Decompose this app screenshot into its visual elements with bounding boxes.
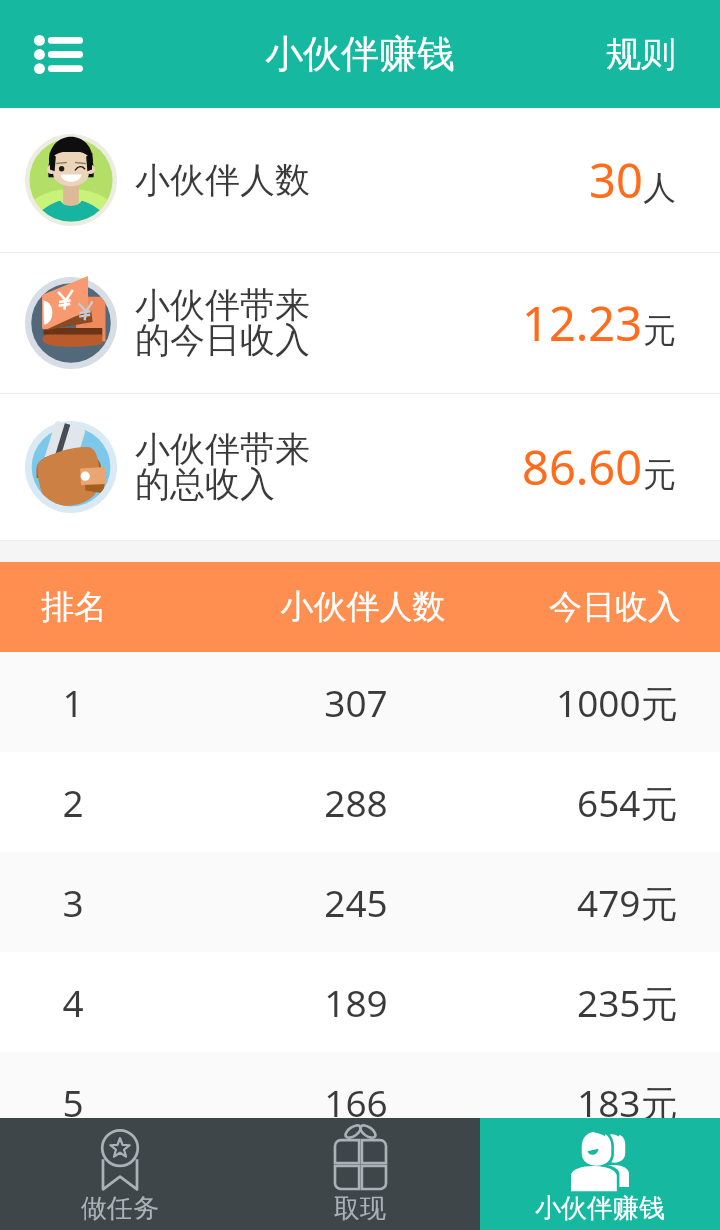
- button[interactable]: 2: [0, 752, 720, 852]
- staticText: 235元: [577, 977, 678, 1028]
- staticText: 小伙伴人数: [218, 586, 508, 628]
- staticText: 288: [211, 777, 501, 827]
- button[interactable]: 3: [0, 852, 720, 952]
- staticText: 今日收入: [549, 586, 681, 628]
- other: Partners earn money: [571, 1126, 629, 1190]
- staticText: 元: [643, 310, 676, 352]
- staticText: 1000元: [556, 677, 678, 728]
- button[interactable]: 小伙伴带来 的今日收入: [0, 253, 720, 393]
- button[interactable]: 4: [0, 952, 720, 1052]
- button[interactable]: Partners earn money: [480, 1118, 720, 1230]
- staticText: 小伙伴赚钱: [535, 1192, 665, 1225]
- button[interactable]: 规则: [582, 18, 720, 90]
- staticText: 做任务: [81, 1192, 159, 1225]
- button[interactable]: 5: [0, 1052, 720, 1152]
- staticText: 2: [0, 777, 146, 827]
- staticText: 4: [0, 977, 146, 1027]
- staticText: 30: [589, 148, 643, 212]
- staticText: 307: [211, 677, 501, 727]
- staticText: 小伙伴人数: [135, 158, 310, 202]
- staticText: 取现: [334, 1192, 386, 1225]
- staticText: 12.23: [522, 291, 643, 355]
- button[interactable]: Menu: [18, 18, 98, 90]
- staticText: 3: [0, 877, 146, 927]
- staticText: 166: [211, 1077, 501, 1127]
- button[interactable]: 1: [0, 652, 720, 752]
- staticText: 654元: [577, 777, 678, 828]
- staticText: 5: [0, 1077, 146, 1127]
- staticText: 1: [0, 677, 146, 727]
- other: Withdraw: [335, 1124, 386, 1190]
- button[interactable]: 小伙伴人数: [0, 108, 720, 252]
- other: Tasks: [100, 1126, 140, 1190]
- staticText: 86.60: [522, 435, 643, 499]
- staticText: 183元: [577, 1077, 678, 1128]
- staticText: 小伙伴带来 的今日收入: [135, 283, 310, 363]
- staticText: 479元: [577, 877, 678, 928]
- staticText: 小伙伴带来 的总收入: [135, 427, 310, 507]
- staticText: 小伙伴赚钱: [265, 30, 455, 78]
- staticText: 元: [643, 454, 676, 496]
- staticText: 189: [211, 977, 501, 1027]
- staticText: 排名: [41, 586, 107, 628]
- staticText: 245: [211, 877, 501, 927]
- button[interactable]: Withdraw: [240, 1118, 480, 1230]
- button[interactable]: Tasks: [0, 1118, 240, 1230]
- staticText: 规则: [606, 32, 676, 76]
- button[interactable]: 小伙伴带来 的总收入: [0, 394, 720, 540]
- staticText: 人: [643, 167, 676, 209]
